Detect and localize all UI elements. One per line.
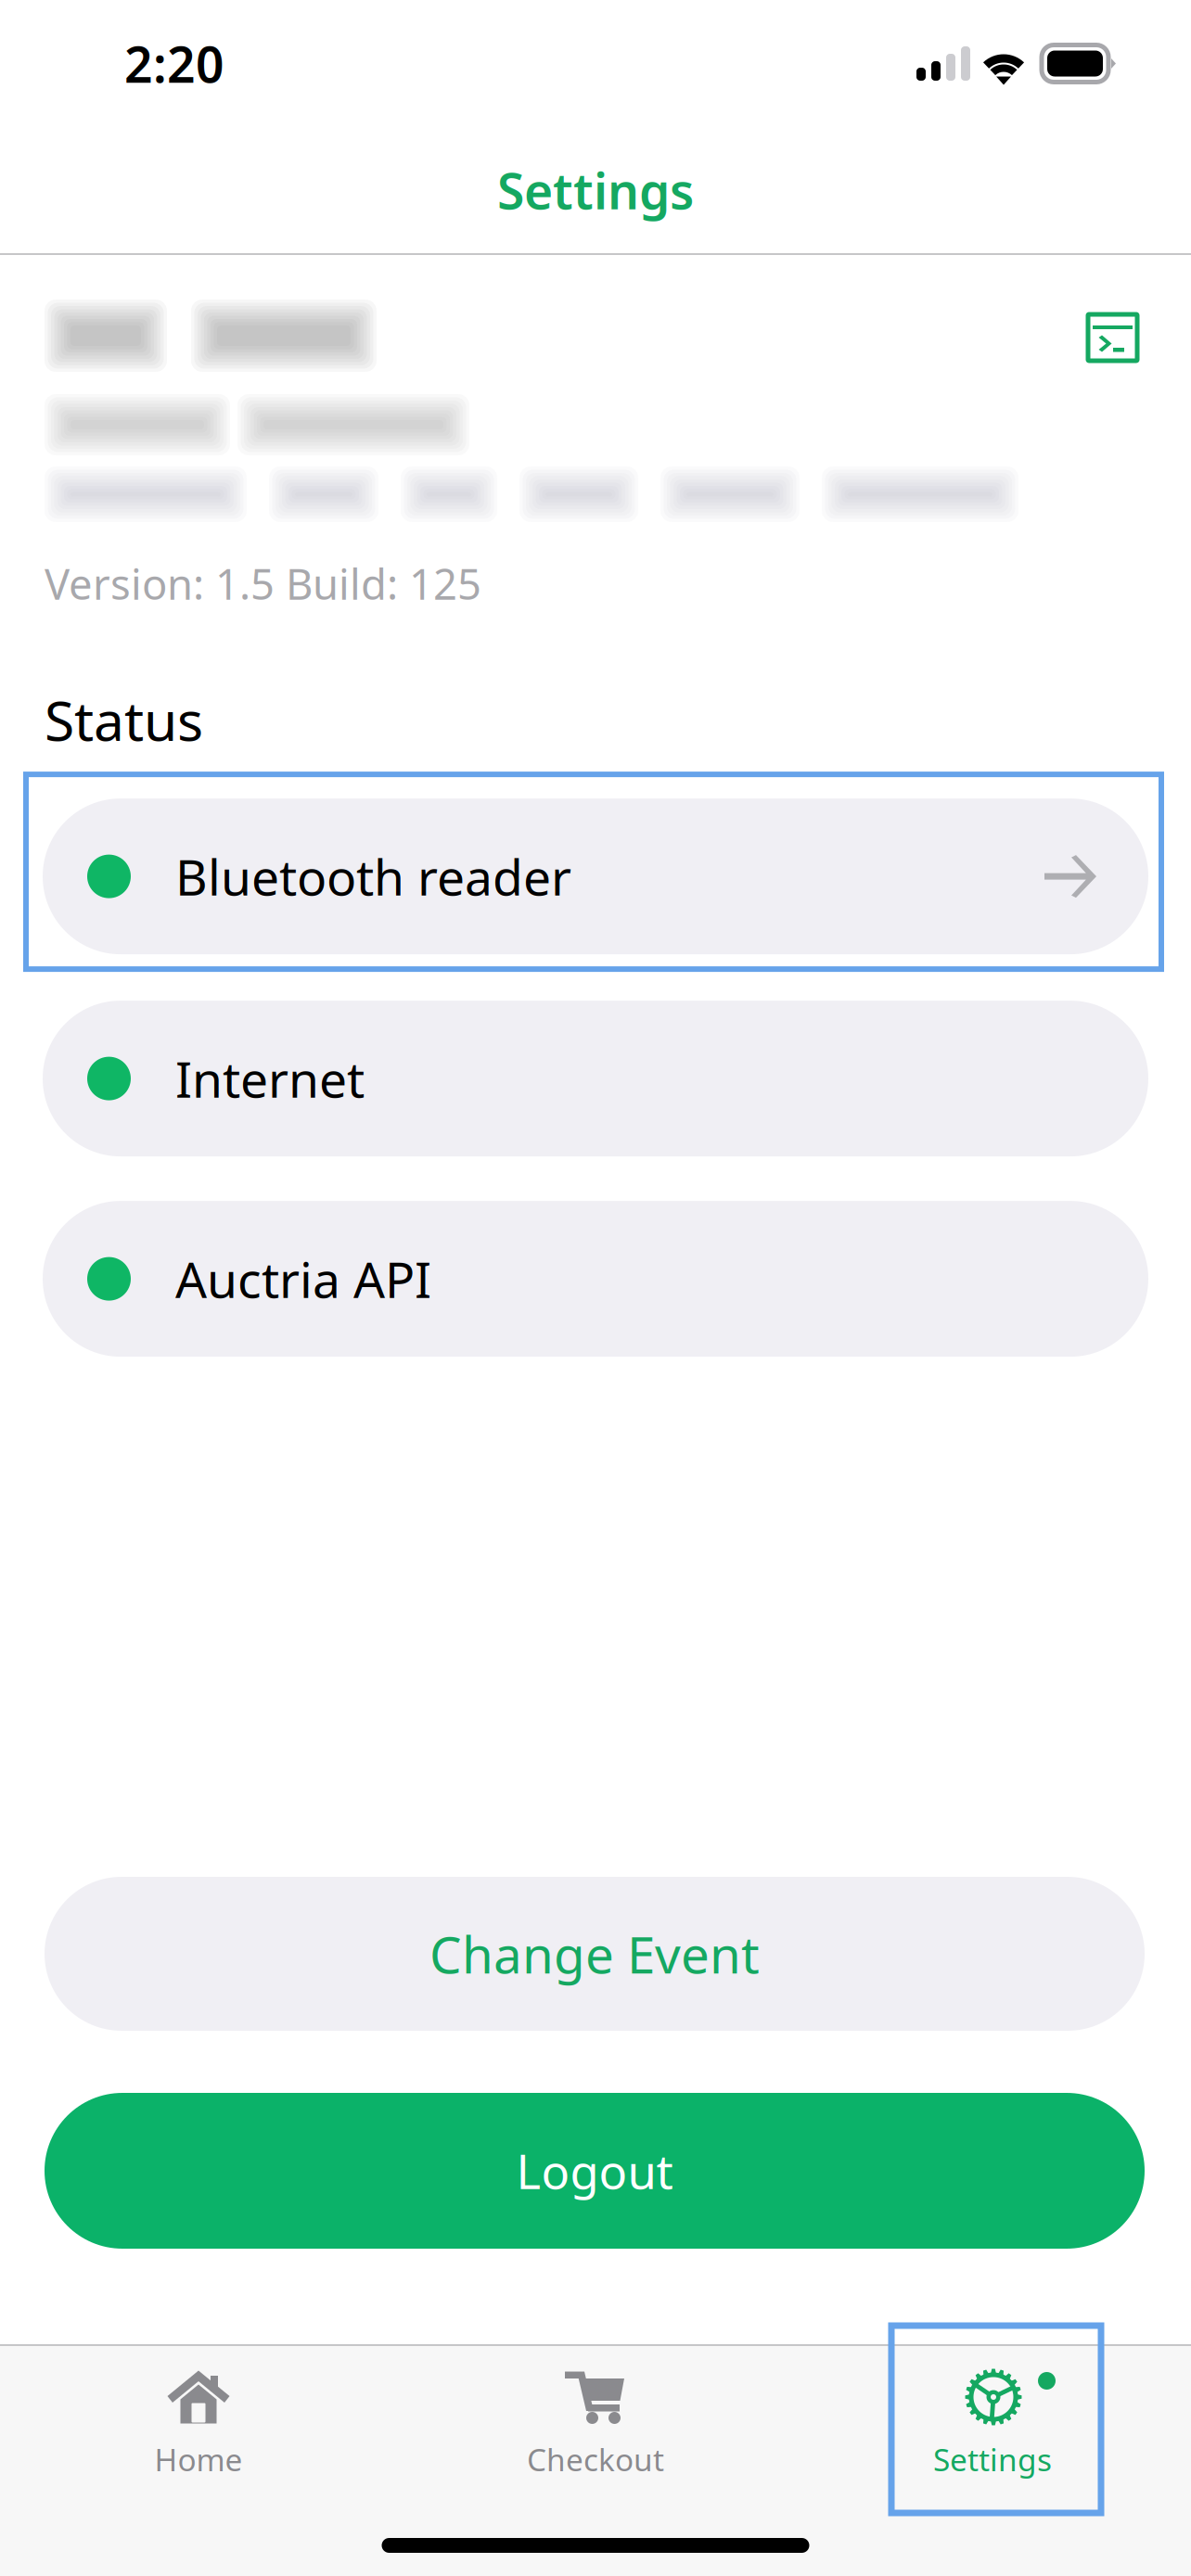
staticText: Status (45, 684, 203, 756)
button[interactable]: Checkout (397, 2346, 794, 2515)
button[interactable]: Home (0, 2346, 397, 2515)
button[interactable]: Change Event (45, 1877, 1145, 2031)
staticText: Auctria API (175, 1246, 431, 1312)
staticText: Version: 1.5 Build: 125 (45, 555, 481, 611)
staticText: Settings (497, 157, 694, 223)
button[interactable]: Auctria API (43, 1201, 1148, 1357)
button[interactable]: Settings (794, 2346, 1191, 2515)
staticText: Home (154, 2439, 243, 2480)
button[interactable]: Developer console (1088, 314, 1137, 361)
staticText: Settings (933, 2439, 1052, 2480)
staticText: Change Event (429, 1920, 760, 1987)
staticText: 2:20 (124, 31, 224, 96)
button[interactable]: Bluetooth reader (43, 798, 1148, 954)
staticText: Logout (516, 2140, 673, 2202)
button[interactable]: Logout (45, 2093, 1145, 2249)
button[interactable]: Internet (43, 1001, 1148, 1156)
staticText: Internet (175, 1046, 365, 1111)
staticText: Checkout (527, 2439, 664, 2480)
staticText: Bluetooth reader (175, 844, 571, 909)
